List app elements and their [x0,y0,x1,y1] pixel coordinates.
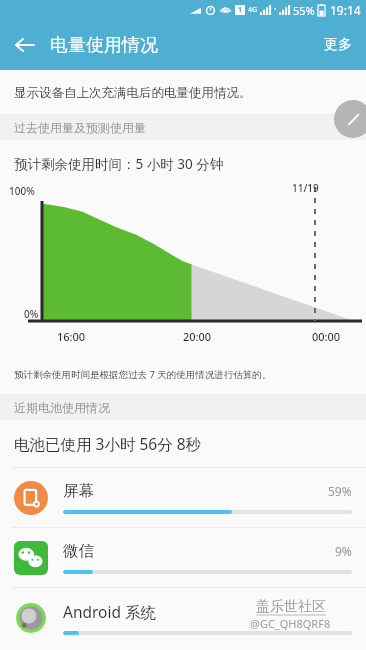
staticText: 盖乐世社区 [256,598,326,616]
staticText: 显示设备自上次充满电后的电量使用情况。 [14,85,252,101]
staticText: 100% [9,184,35,198]
staticText: 19:14 [330,2,361,18]
button[interactable]: 更多 [324,36,352,54]
staticText: 屏幕 [63,481,94,501]
staticText: ᵌ [274,5,277,15]
staticText: @GC_QH8QRF8 [250,616,331,631]
button[interactable]: 微信 [0,528,366,587]
staticText: 1 [238,5,243,15]
button[interactable]: 屏幕 [0,468,366,527]
staticText: 电量使用情况 [50,34,158,57]
staticText: 11/19 [292,181,319,195]
staticText: 电池已使用 3小时 56分 8秒 [14,433,202,454]
staticText: Android 系统 [63,601,157,622]
button[interactable]: Edit [334,100,366,138]
staticText: 20:00 [183,329,212,344]
staticText: 9% [335,543,352,559]
staticText: 0% [24,307,39,321]
staticText: 更多 [324,36,352,54]
staticText: 过去使用量及预测使用量 [14,120,146,135]
button[interactable]: Android 系统 [0,588,366,647]
staticText: 预计剩余使用时间是根据您过去 7 天的使用情况进行估算的。 [14,368,272,381]
staticText: 微信 [63,541,94,561]
staticText: 00:00 [312,329,341,344]
staticText: 16:00 [57,329,86,344]
staticText: 近期电池使用情况 [14,400,110,415]
staticText: 4G [248,5,258,15]
button[interactable]: Back [0,21,48,69]
staticText: 预计剩余使用时间：5 小时 30 分钟 [14,155,224,173]
staticText: 55% [293,3,315,18]
staticText: 59% [328,483,352,499]
